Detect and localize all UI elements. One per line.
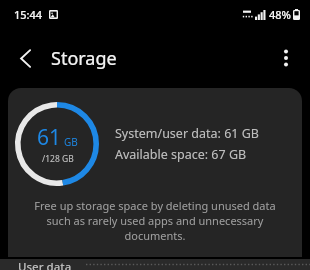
button[interactable]: More options <box>267 39 305 77</box>
button[interactable]: Navigate up <box>6 39 44 77</box>
staticText: /128 GB <box>42 153 74 165</box>
staticText: GB <box>64 135 78 149</box>
staticText: Storage <box>51 46 117 71</box>
staticText: User data <box>18 259 72 270</box>
staticText: Free up storage space by deleting unused… <box>24 198 286 243</box>
staticText: System/user data: 61 GB <box>115 125 259 142</box>
staticText: 15:44 <box>14 7 43 22</box>
staticText: 48% <box>269 7 291 22</box>
staticText: Available space: 67 GB <box>115 146 247 163</box>
staticText: 61 <box>37 123 62 152</box>
